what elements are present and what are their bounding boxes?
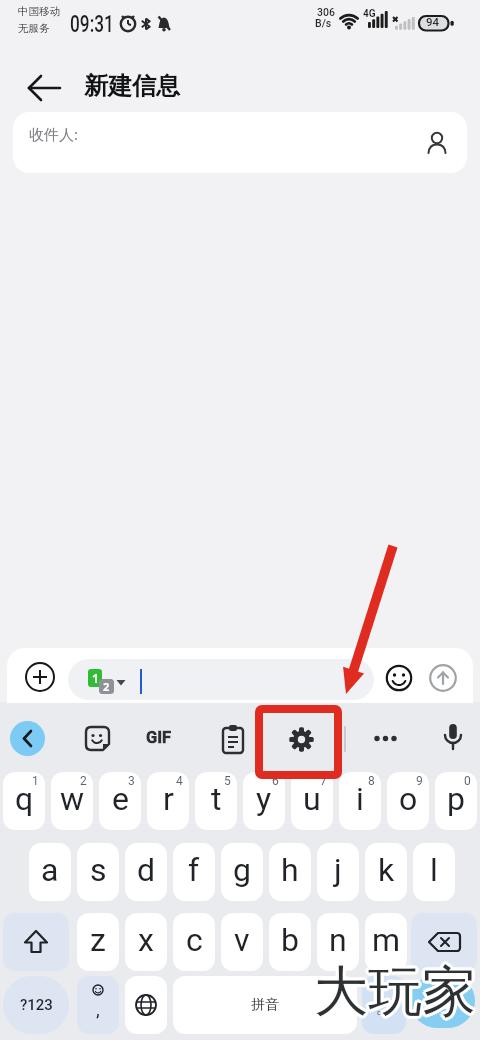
button[interactable] [411,913,477,971]
button[interactable] [84,725,111,752]
button[interactable] [410,974,475,1028]
button[interactable] [221,724,245,754]
staticText: GIF [146,728,172,747]
button[interactable]: o [387,772,429,830]
staticText: c [186,921,203,959]
staticText: 7 [320,774,327,788]
button[interactable]: f [173,843,215,901]
button[interactable]: w [51,772,93,830]
button[interactable]: z [77,913,119,971]
staticText: 大玩家 [312,956,474,1024]
staticText: j [334,851,342,889]
staticText: a [41,851,59,889]
staticText: 拼音 [251,996,279,1014]
button[interactable] [24,661,56,693]
button[interactable]: x [125,913,167,971]
button[interactable]: ?123 [3,976,69,1034]
staticText: v [234,921,250,959]
staticText: ?123 [20,996,53,1014]
staticText: , [96,998,100,1020]
button[interactable]: p [435,772,477,830]
button[interactable] [3,913,69,971]
button[interactable]: e [99,772,141,830]
staticText: 无服务 [18,22,50,35]
staticText: e [112,780,129,818]
button[interactable] [442,723,464,755]
staticText: 3 [128,774,135,788]
staticText: b [281,921,299,959]
button[interactable]: i [339,772,381,830]
button[interactable] [373,733,398,744]
button[interactable] [10,721,45,756]
staticText: 大玩家 [311,958,473,1026]
staticText: 大玩家 [314,961,476,1029]
button[interactable]: j [317,843,359,901]
button[interactable]: b [269,913,311,971]
staticText: 2 [80,774,87,788]
button[interactable]: a [29,843,71,901]
staticText: 5 [224,774,231,788]
staticText: B/s [315,17,332,29]
staticText: 306 [317,6,335,18]
button[interactable]: h [269,843,311,901]
staticText: l [430,851,438,889]
button[interactable]: 。 [362,976,406,1034]
staticText: i [356,780,364,818]
button[interactable]: v [221,913,263,971]
staticText: x [138,921,154,959]
staticText: g [233,851,251,889]
button[interactable] [429,664,457,692]
button[interactable] [287,725,316,754]
staticText: 0 [464,774,471,788]
button[interactable]: c [173,913,215,971]
staticText: n [329,921,347,959]
button[interactable]: l [413,843,455,901]
staticText: 1 [32,774,39,788]
button[interactable]: k [365,843,407,901]
staticText: t [211,780,222,818]
button[interactable]: t [195,772,237,830]
button[interactable]: , [77,976,119,1034]
staticText: 大玩家 [317,958,479,1026]
button[interactable] [385,664,413,692]
staticText: 2 [103,679,110,694]
button[interactable]: 1 [68,659,374,700]
button[interactable]: 拼音 [173,976,357,1034]
staticText: o [399,780,418,818]
button[interactable]: GIF [146,728,186,750]
staticText: d [137,851,156,889]
staticText: 6 [272,774,279,788]
staticText: 1 [92,670,99,686]
staticText: q [15,780,34,818]
button[interactable]: r [147,772,189,830]
staticText: 大玩家 [312,960,474,1028]
staticText: 中国移动 [18,5,60,18]
staticText: y [256,780,272,818]
staticText: h [281,851,299,889]
button[interactable]: n [317,913,359,971]
staticText: u [303,780,321,818]
staticText: w [60,780,85,818]
button[interactable]: y [243,772,285,830]
button[interactable] [125,976,167,1034]
staticText: f [188,851,200,889]
staticText: 收件人: [29,124,79,144]
button[interactable] [20,64,64,108]
staticText: 新建信息 [84,71,180,101]
button[interactable]: 收件人: [13,112,467,173]
staticText: s [90,851,107,889]
button[interactable]: d [125,843,167,901]
staticText: 94 [426,15,440,28]
staticText: 。 [376,997,393,1018]
staticText: z [90,921,106,959]
button[interactable]: g [221,843,263,901]
button[interactable]: m [365,913,407,971]
button[interactable]: q [3,772,45,830]
staticText: 8 [368,774,375,788]
staticText: 9 [416,774,423,788]
staticText: 09:31 [70,10,114,38]
button[interactable]: u [291,772,333,830]
staticText: p [447,780,465,818]
button[interactable]: s [77,843,119,901]
staticText: m [372,921,401,959]
